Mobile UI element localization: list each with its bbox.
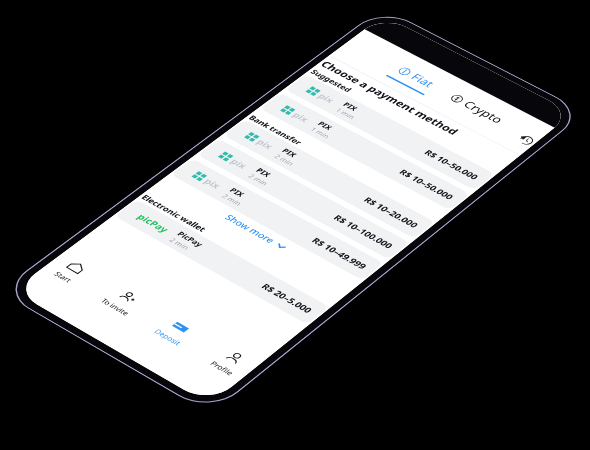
button[interactable]: pix (16, 199, 374, 247)
staticText: Bank transfer (18, 318, 114, 337)
button[interactable]: Transaction history (348, 95, 376, 123)
staticText: PIX (104, 345, 126, 363)
staticText: pix (63, 270, 88, 292)
staticText: 1 min (104, 282, 136, 298)
staticText: Crypto (240, 84, 306, 113)
staticText: R$ 10–50.000 (265, 213, 360, 233)
staticText: R$ 10–20.000 (265, 352, 360, 372)
staticText: R$ 10–50.000 (265, 271, 360, 291)
staticText: PIX (104, 206, 126, 224)
button[interactable]: pix (16, 338, 374, 386)
staticText: Choose a payment method (18, 149, 273, 175)
staticText: 2 min (104, 363, 136, 379)
button[interactable]: pix (16, 396, 374, 444)
button[interactable]: Crypto (205, 84, 315, 122)
button[interactable]: pix (16, 257, 374, 305)
staticText: pix (63, 212, 88, 234)
